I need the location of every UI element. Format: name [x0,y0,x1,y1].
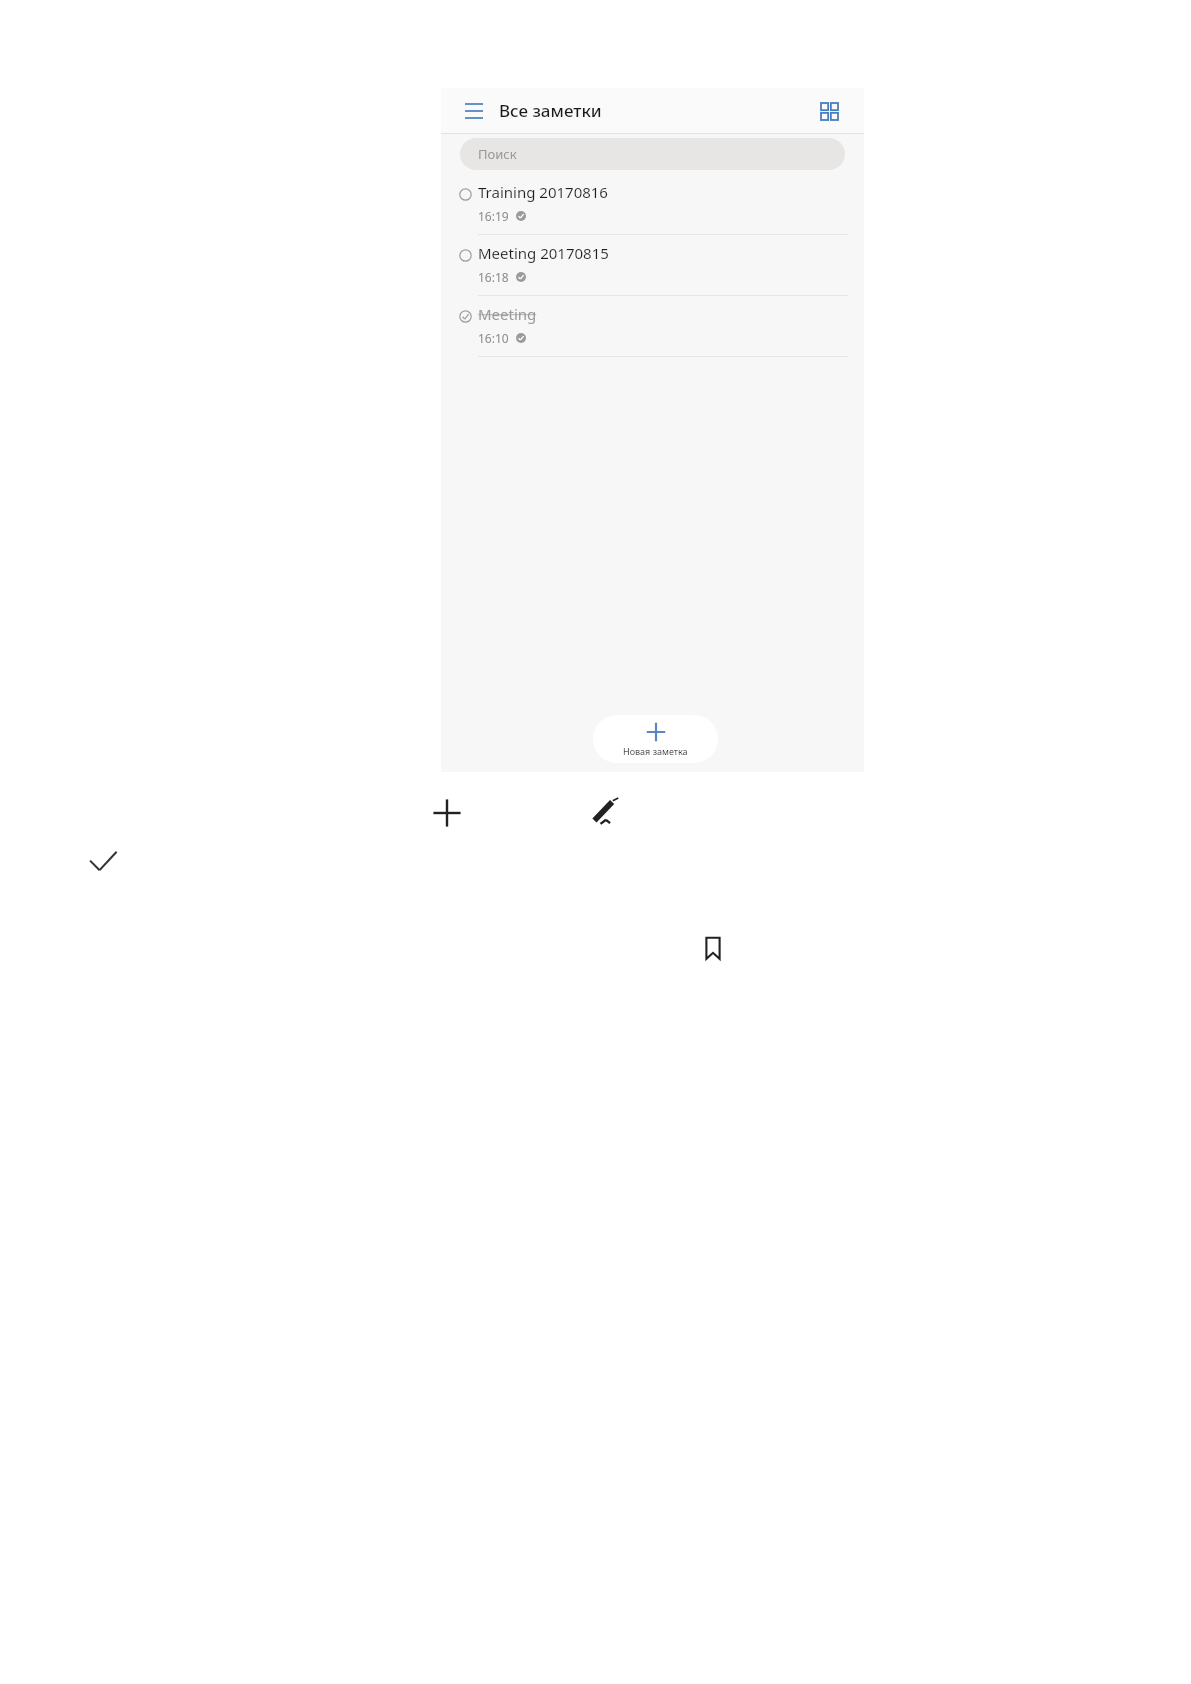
button[interactable]: Training 20170816 [441,174,864,235]
staticText: Все заметки [499,99,602,122]
button[interactable]: Новая заметка [593,715,718,763]
button[interactable]: Grid view [812,94,846,128]
staticText: Meeting 20170815 [478,243,609,263]
button[interactable]: Done [86,845,120,879]
button[interactable]: Menu [457,94,491,128]
staticText: 16:10 [478,330,509,346]
staticText: 16:18 [478,269,509,285]
button[interactable]: Add [430,796,464,830]
staticText: 16:19 [478,208,509,224]
button[interactable]: Meeting [441,296,864,357]
staticText: Поиск [478,145,517,163]
button[interactable]: Bookmark [698,933,728,963]
staticText: Новая заметка [623,745,688,757]
staticText: Training 20170816 [478,182,608,202]
button[interactable]: Meeting 20170815 [441,235,864,296]
staticText: Meeting [478,304,537,324]
button[interactable]: Handwriting [589,796,623,830]
button[interactable]: Поиск [460,138,845,170]
